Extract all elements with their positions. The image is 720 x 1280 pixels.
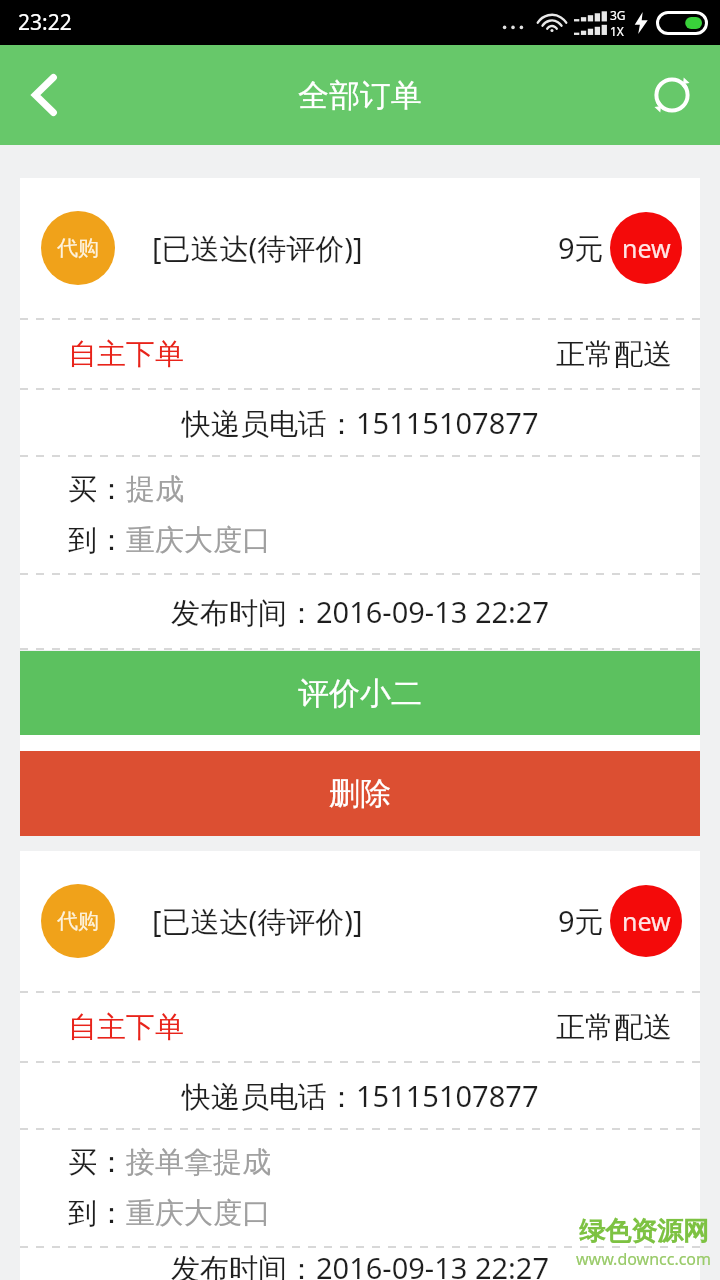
staticText: 全部订单 (298, 76, 422, 115)
staticText: 发布时间：2016-09-13 22:27 (171, 1248, 550, 1280)
staticText: 接单拿提成 (126, 1144, 271, 1181)
staticText: 删除 (329, 774, 391, 813)
staticText: 3G (610, 7, 626, 23)
staticText: 重庆大度口 (126, 1195, 271, 1232)
button[interactable]: 代购 (20, 851, 700, 1280)
staticText: 正常配送 (556, 1009, 672, 1046)
staticText: 到： (68, 522, 126, 559)
staticText: 发布时间：2016-09-13 22:27 (171, 592, 550, 632)
staticText: 提成 (126, 471, 184, 508)
staticText: 买： (68, 471, 126, 508)
staticText: [已送达(待评价)] (152, 901, 363, 941)
staticText: 绿色资源网 (579, 1215, 709, 1248)
staticText: new (622, 904, 671, 938)
staticText: 到： (68, 1195, 126, 1232)
staticText: 快递员电话：15115107877 (182, 403, 539, 443)
button[interactable]: 代购 (20, 178, 700, 836)
staticText: 自主下单 (68, 336, 184, 373)
staticText: [已送达(待评价)] (152, 228, 363, 268)
staticText: www.downcc.com (576, 1248, 712, 1270)
staticText: 评价小二 (298, 674, 422, 713)
button[interactable]: 评价小二 (20, 651, 700, 735)
button[interactable]: Back (0, 45, 90, 145)
button[interactable]: 删除 (20, 751, 700, 836)
button[interactable]: Refresh (624, 45, 720, 145)
staticText: 快递员电话：15115107877 (182, 1076, 539, 1116)
staticText: 23:22 (18, 8, 72, 37)
staticText: 代购 (57, 908, 99, 934)
staticText: new (622, 231, 671, 265)
staticText: 自主下单 (68, 1009, 184, 1046)
staticText: 重庆大度口 (126, 522, 271, 559)
staticText: 9元 (558, 901, 604, 941)
staticText: 9元 (558, 228, 604, 268)
staticText: 代购 (57, 235, 99, 261)
staticText: 正常配送 (556, 336, 672, 373)
staticText: 1X (610, 23, 624, 39)
staticText: 买： (68, 1144, 126, 1181)
